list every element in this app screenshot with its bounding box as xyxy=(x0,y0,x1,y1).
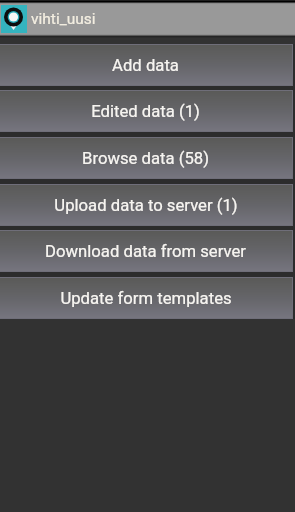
staticText: Upload data to server (1) xyxy=(54,196,238,216)
other: App icon xyxy=(1,5,27,33)
button[interactable]: Update form templates xyxy=(0,277,295,319)
staticText: vihti_uusi xyxy=(31,10,96,28)
button[interactable]: Browse data (58) xyxy=(0,137,295,184)
button[interactable]: Download data from server xyxy=(0,230,295,277)
staticText: Add data xyxy=(112,56,179,76)
staticText: Browse data (58) xyxy=(82,149,209,169)
button[interactable]: Add data xyxy=(0,44,295,90)
button[interactable]: Edited data (1) xyxy=(0,90,295,137)
staticText: Edited data (1) xyxy=(91,102,200,122)
button[interactable]: Upload data to server (1) xyxy=(0,184,295,230)
button[interactable]: App icon xyxy=(0,4,295,34)
staticText: Download data from server xyxy=(45,242,246,262)
staticText: Update form templates xyxy=(60,289,232,309)
